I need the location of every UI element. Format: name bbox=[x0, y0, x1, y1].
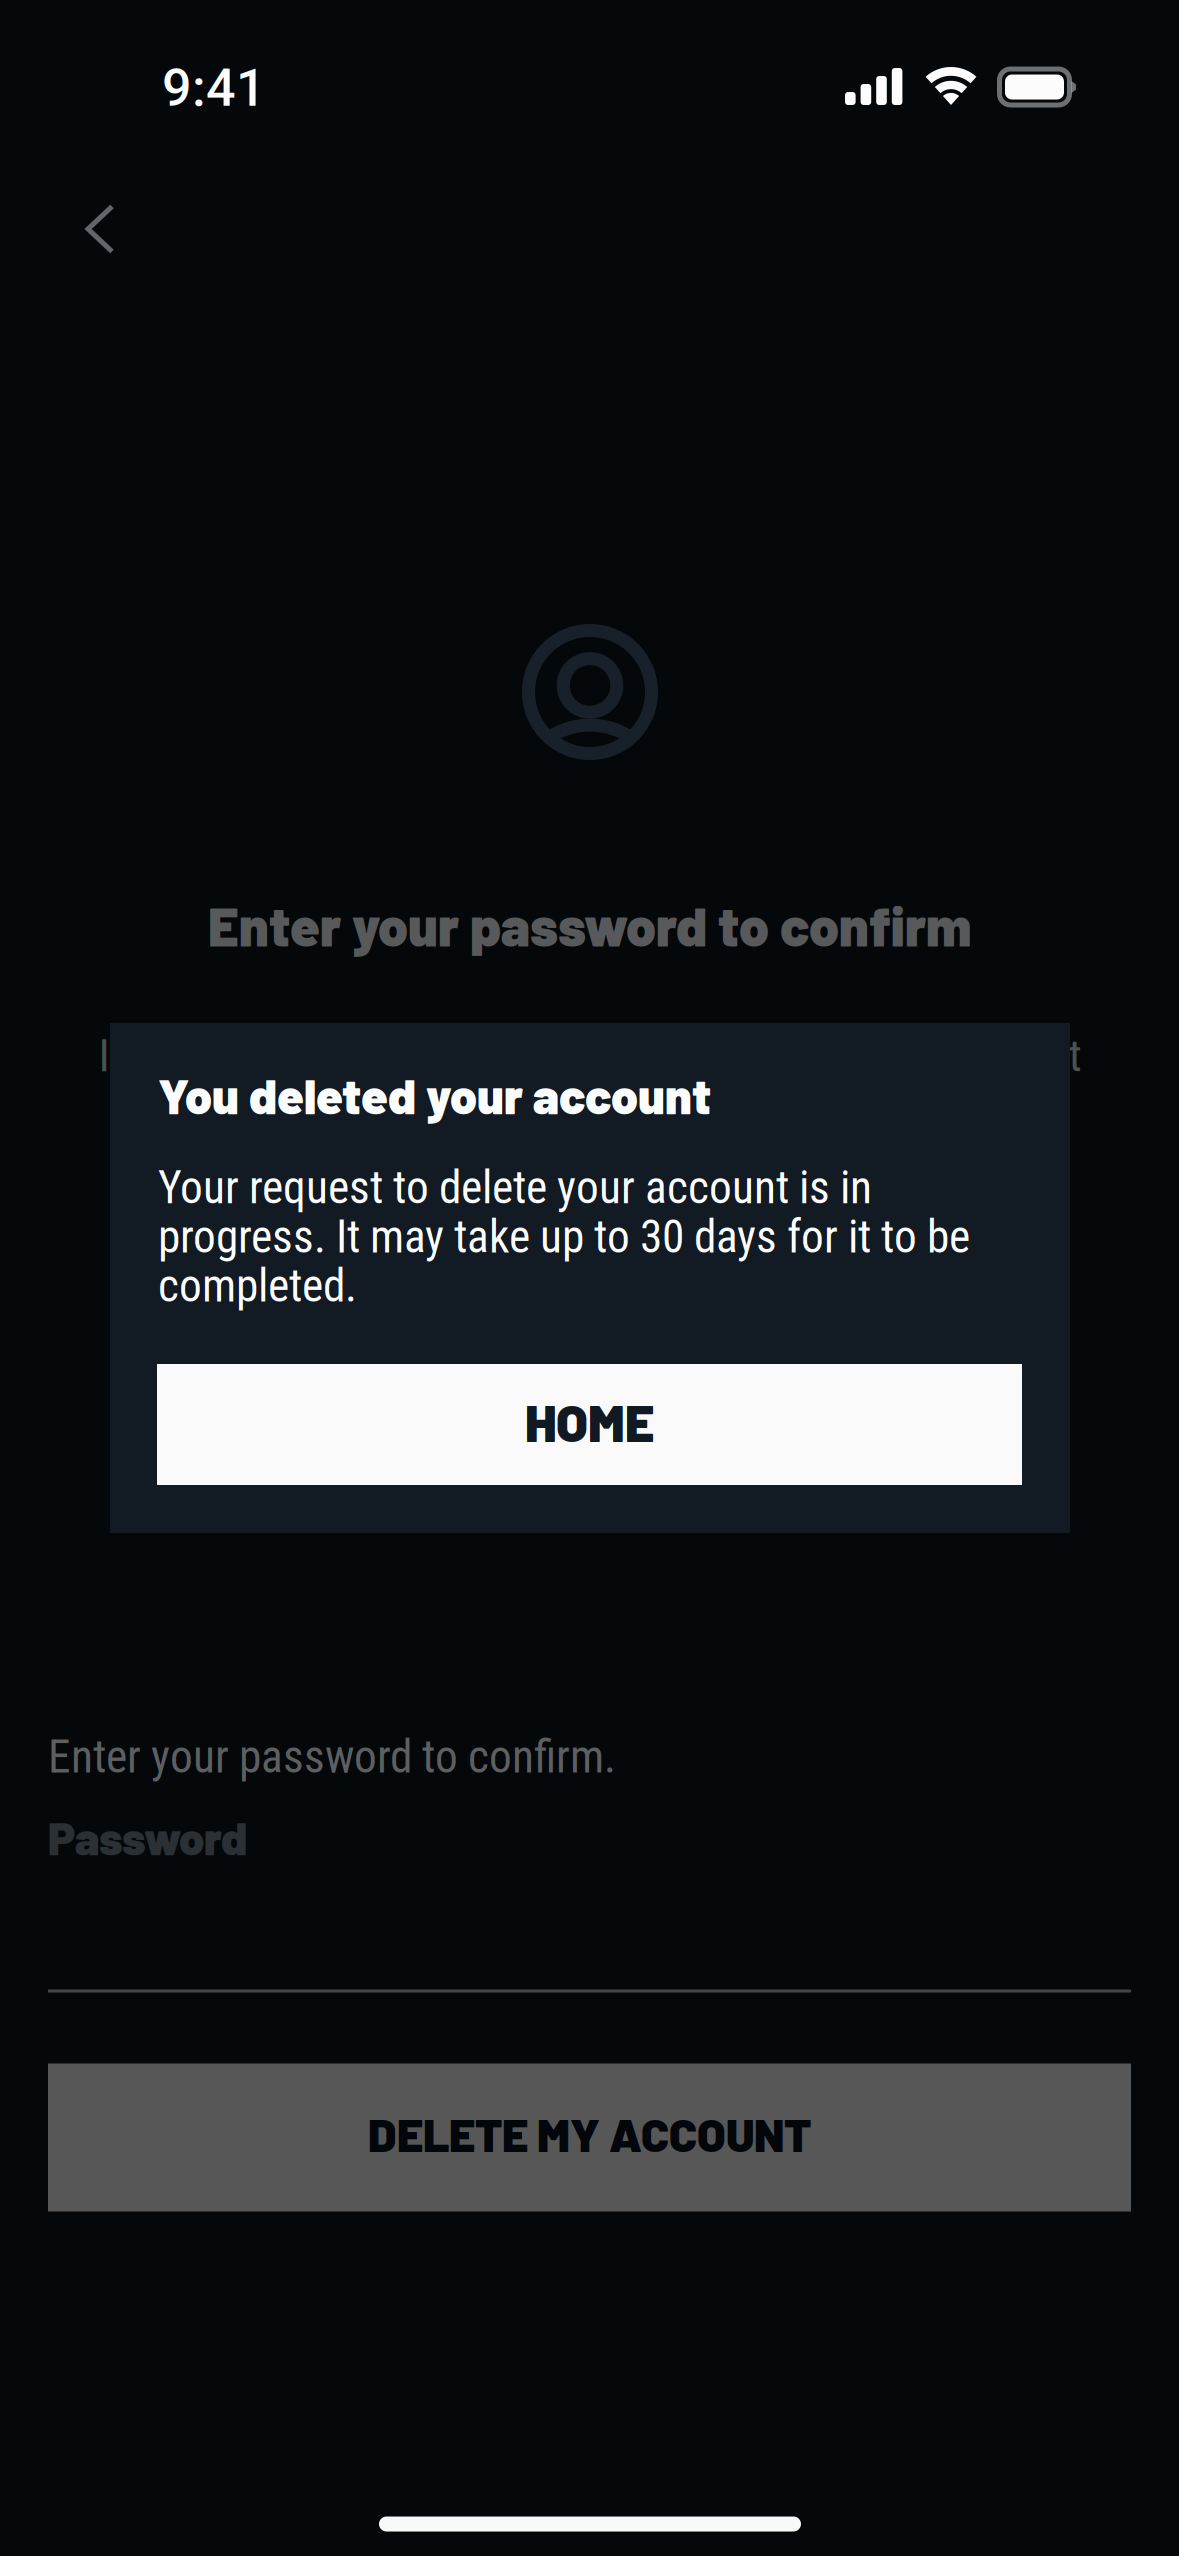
staticText: 9:41 bbox=[162, 57, 266, 118]
button[interactable]: HOME bbox=[157, 1364, 1022, 1485]
staticText: You deleted your account bbox=[158, 1066, 711, 1124]
staticText: HOME bbox=[525, 1391, 654, 1452]
staticText: If you delete your account, you will not… bbox=[98, 1030, 1081, 1082]
button[interactable]: DELETE MY ACCOUNT bbox=[48, 2063, 1131, 2211]
button[interactable]: Back bbox=[49, 167, 151, 290]
staticText: Your request to delete your account is i… bbox=[158, 1161, 970, 1313]
staticText: DELETE MY ACCOUNT bbox=[368, 2106, 811, 2161]
staticText: Enter your password to confirm. bbox=[48, 1730, 616, 1783]
staticText: Enter your password to confirm bbox=[208, 893, 971, 957]
staticText: Password bbox=[48, 1810, 247, 1864]
